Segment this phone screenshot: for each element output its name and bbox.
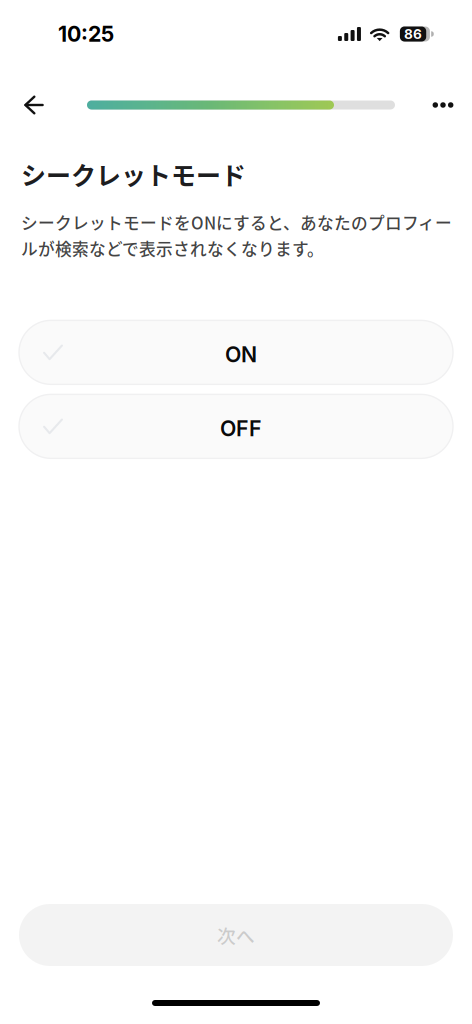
staticText: シークレットモード	[21, 156, 246, 192]
staticText: OFF	[220, 415, 262, 441]
button[interactable]: Back	[14, 83, 54, 127]
button[interactable]: More options	[423, 83, 463, 127]
button[interactable]: ON	[19, 320, 453, 384]
staticText: 次へ	[217, 921, 255, 948]
staticText: 10:25	[58, 21, 114, 47]
button[interactable]: OFF	[19, 394, 453, 458]
staticText: 86	[404, 26, 422, 42]
staticText: ON	[225, 341, 257, 367]
staticText: シークレットモードをONにすると、あなたのプロフィールが検索などで表示されなくな…	[21, 210, 452, 260]
button[interactable]: 次へ	[19, 904, 453, 966]
